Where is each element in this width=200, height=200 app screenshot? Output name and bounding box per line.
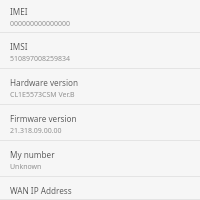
staticText: 510897008259834 [10, 54, 71, 64]
button[interactable]: My number [0, 141, 200, 177]
staticText: 000000000000000 [10, 19, 71, 29]
staticText: 10.25.72.205 [10, 198, 52, 200]
button[interactable]: Firmware version [0, 105, 200, 141]
staticText: Unknown [10, 162, 42, 172]
staticText: WAN IP Address [10, 185, 72, 196]
staticText: Firmware version [10, 113, 77, 124]
staticText: IMSI [10, 41, 28, 52]
staticText: My number [10, 149, 55, 160]
staticText: 21.318.09.00.00 [10, 126, 62, 136]
button[interactable]: Hardware version [0, 69, 200, 105]
staticText: Hardware version [10, 77, 79, 88]
button[interactable]: IMSI [0, 33, 200, 69]
button[interactable]: IMEI [0, 0, 200, 33]
staticText: IMEI [10, 6, 28, 17]
staticText: CL1E5573CSM Ver.B [10, 90, 75, 100]
button[interactable]: WAN IP Address [0, 177, 200, 200]
